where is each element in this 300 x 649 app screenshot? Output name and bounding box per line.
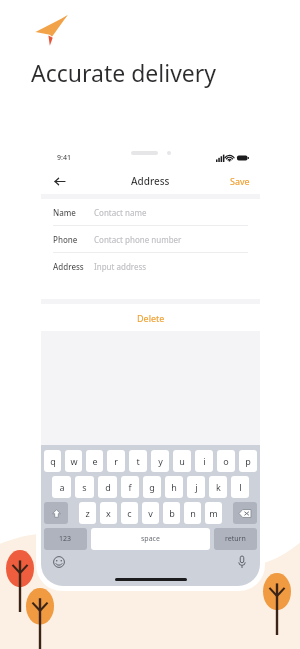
button[interactable]: d bbox=[98, 476, 117, 498]
staticText: h bbox=[171, 481, 177, 493]
staticText: s bbox=[82, 481, 87, 493]
staticText: t bbox=[136, 455, 140, 467]
button[interactable]: 123 bbox=[44, 528, 87, 550]
staticText: o bbox=[223, 455, 229, 467]
staticText: a bbox=[59, 481, 65, 493]
staticText: b bbox=[169, 507, 175, 519]
button[interactable]: c bbox=[121, 502, 138, 524]
button[interactable]: Shift bbox=[44, 502, 68, 524]
staticText: e bbox=[92, 455, 98, 467]
button[interactable]: i bbox=[195, 450, 213, 472]
staticText: Address bbox=[131, 174, 170, 188]
button[interactable]: z bbox=[79, 502, 96, 524]
button[interactable]: p bbox=[239, 450, 257, 472]
button[interactable]: o bbox=[217, 450, 235, 472]
button[interactable]: Backspace bbox=[233, 502, 257, 524]
button[interactable]: Delete bbox=[41, 304, 260, 331]
button[interactable]: Address bbox=[41, 253, 260, 279]
button[interactable]: Back bbox=[47, 169, 71, 193]
staticText: y bbox=[158, 455, 163, 467]
staticText: c bbox=[127, 507, 132, 519]
staticText: Contact name bbox=[94, 207, 147, 218]
button[interactable]: Name bbox=[41, 199, 260, 226]
button[interactable]: k bbox=[209, 476, 227, 498]
staticText: p bbox=[245, 455, 251, 467]
button[interactable]: b bbox=[163, 502, 180, 524]
button[interactable]: m bbox=[205, 502, 222, 524]
staticText: space bbox=[141, 534, 160, 544]
staticText: r bbox=[114, 455, 118, 467]
staticText: n bbox=[190, 507, 196, 519]
staticText: Save bbox=[230, 175, 250, 187]
button[interactable]: Microphone bbox=[234, 554, 250, 570]
button[interactable]: Phone bbox=[41, 226, 260, 253]
staticText: k bbox=[216, 481, 221, 493]
staticText: Contact phone number bbox=[94, 234, 182, 245]
staticText: w bbox=[70, 455, 78, 467]
staticText: i bbox=[203, 455, 206, 467]
button[interactable]: Emoji bbox=[51, 554, 67, 570]
button[interactable]: h bbox=[165, 476, 183, 498]
staticText: l bbox=[239, 481, 242, 493]
button[interactable]: x bbox=[100, 502, 117, 524]
button[interactable]: g bbox=[143, 476, 161, 498]
button[interactable]: Save bbox=[230, 175, 250, 187]
staticText: q bbox=[50, 455, 56, 467]
staticText: Delete bbox=[137, 312, 165, 324]
button[interactable]: s bbox=[75, 476, 94, 498]
button[interactable]: v bbox=[142, 502, 159, 524]
staticText: Name bbox=[53, 207, 76, 218]
staticText: Address bbox=[53, 261, 84, 272]
staticText: z bbox=[85, 507, 90, 519]
staticText: Input address bbox=[94, 261, 147, 272]
button[interactable]: r bbox=[107, 450, 125, 472]
staticText: m bbox=[209, 507, 218, 519]
staticText: g bbox=[149, 481, 155, 493]
staticText: Accurate delivery bbox=[31, 57, 217, 88]
staticText: return bbox=[225, 534, 246, 544]
staticText: 123 bbox=[59, 534, 72, 544]
staticText: x bbox=[106, 507, 111, 519]
button[interactable]: l bbox=[231, 476, 249, 498]
staticText: j bbox=[195, 481, 198, 493]
staticText: u bbox=[179, 455, 185, 467]
staticText: 9:41 bbox=[57, 153, 71, 163]
button[interactable]: f bbox=[121, 476, 139, 498]
staticText: f bbox=[128, 481, 132, 493]
button[interactable]: e bbox=[86, 450, 103, 472]
button[interactable]: j bbox=[187, 476, 205, 498]
button[interactable]: space bbox=[91, 528, 210, 550]
staticText: Phone bbox=[53, 234, 78, 245]
button[interactable]: a bbox=[52, 476, 71, 498]
button[interactable]: y bbox=[151, 450, 169, 472]
button[interactable]: return bbox=[214, 528, 257, 550]
button[interactable]: t bbox=[129, 450, 147, 472]
staticText: v bbox=[148, 507, 153, 519]
button[interactable]: n bbox=[184, 502, 201, 524]
button[interactable]: w bbox=[65, 450, 82, 472]
button[interactable]: u bbox=[173, 450, 191, 472]
staticText: d bbox=[105, 481, 111, 493]
button[interactable]: q bbox=[44, 450, 61, 472]
